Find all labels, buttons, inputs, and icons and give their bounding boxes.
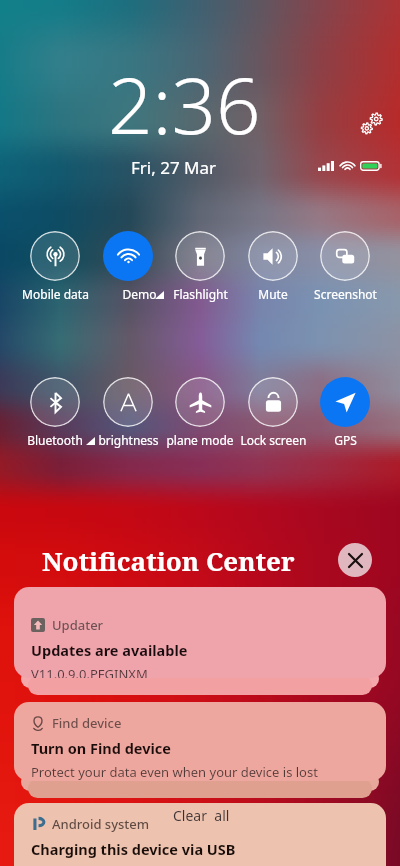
staticText: Fri, 27 Mar (131, 156, 217, 179)
staticText: Flashlight (173, 286, 228, 302)
staticText: Bluetooth (27, 432, 83, 448)
button[interactable]: Find device (14, 702, 386, 781)
staticText: V11.0.9.0.PFGINXM (31, 665, 148, 678)
button[interactable]: Close (338, 543, 372, 577)
button[interactable]: Updater (14, 587, 386, 678)
staticText: plane mode (166, 432, 234, 448)
button[interactable]: Lock screen (248, 377, 298, 427)
button[interactable]: Bluetooth (30, 377, 80, 427)
button[interactable]: plane mode (175, 377, 225, 427)
button[interactable]: Settings (358, 112, 384, 138)
button[interactable]: Flashlight (175, 231, 225, 281)
button[interactable]: GPS (320, 377, 370, 427)
staticText: Demo (122, 286, 157, 302)
staticText: GPS (334, 432, 357, 448)
staticText: Updater (52, 616, 104, 634)
button[interactable]: Demo (103, 231, 153, 281)
button[interactable]: Screenshot (320, 231, 370, 281)
staticText: Protect your data even when your device … (31, 763, 318, 781)
staticText: Screenshot (314, 286, 377, 302)
button[interactable]: Android system (14, 803, 386, 866)
button[interactable]: Clear all (168, 803, 234, 827)
staticText: Turn on Find device (31, 738, 171, 758)
staticText: Find device (52, 714, 122, 732)
staticText: Clear all (173, 806, 230, 825)
button[interactable]: brightness (103, 377, 153, 427)
staticText: brightness (98, 432, 159, 448)
staticText: 2:36 (108, 51, 261, 157)
staticText: Notification Center (42, 543, 295, 578)
staticText: Mute (258, 286, 288, 302)
staticText: Mobile data (22, 286, 89, 302)
staticText: Updates are available (31, 640, 188, 660)
staticText: Android system (52, 815, 150, 833)
staticText: Charging this device via USB (31, 839, 236, 859)
button[interactable]: Mute (248, 231, 298, 281)
staticText: Lock screen (240, 432, 307, 448)
button[interactable]: Mobile data (30, 231, 80, 281)
